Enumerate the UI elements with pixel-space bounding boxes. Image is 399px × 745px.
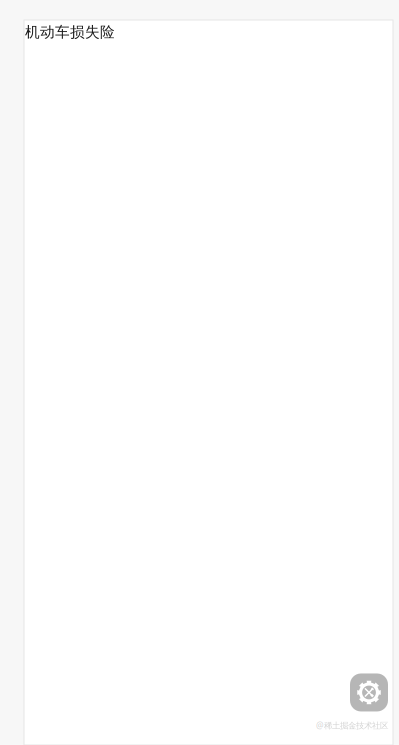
staticText: 机动车损失险 [25, 23, 115, 41]
button[interactable]: Tools [350, 673, 388, 711]
staticText: @稀土掘金技术社区 [316, 719, 388, 731]
